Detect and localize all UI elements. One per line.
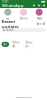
button[interactable]: Anna [16, 9, 31, 20]
button[interactable]: Me [0, 9, 16, 20]
staticText: See all [36, 22, 45, 26]
button[interactable]: Search [1, 28, 45, 32]
button[interactable]: Unread [11, 40, 22, 49]
button[interactable]: See all [36, 22, 45, 26]
button[interactable]: Mark [31, 9, 47, 20]
staticText: Groups [25, 41, 33, 48]
staticText: Mark [37, 17, 42, 20]
staticText: 9:41 [2, 0, 9, 3]
staticText: Unread [12, 41, 20, 48]
button[interactable]: Groups [24, 40, 35, 49]
staticText: Search [6, 28, 14, 32]
staticText: ●● [41, 0, 45, 3]
staticText: WhatsApp [2, 3, 24, 8]
staticText: All [3, 43, 7, 46]
button[interactable]: All [1, 42, 9, 47]
staticText: Me [6, 17, 10, 20]
staticText: Anna [20, 17, 27, 20]
staticText: Recent updates [1, 19, 18, 29]
